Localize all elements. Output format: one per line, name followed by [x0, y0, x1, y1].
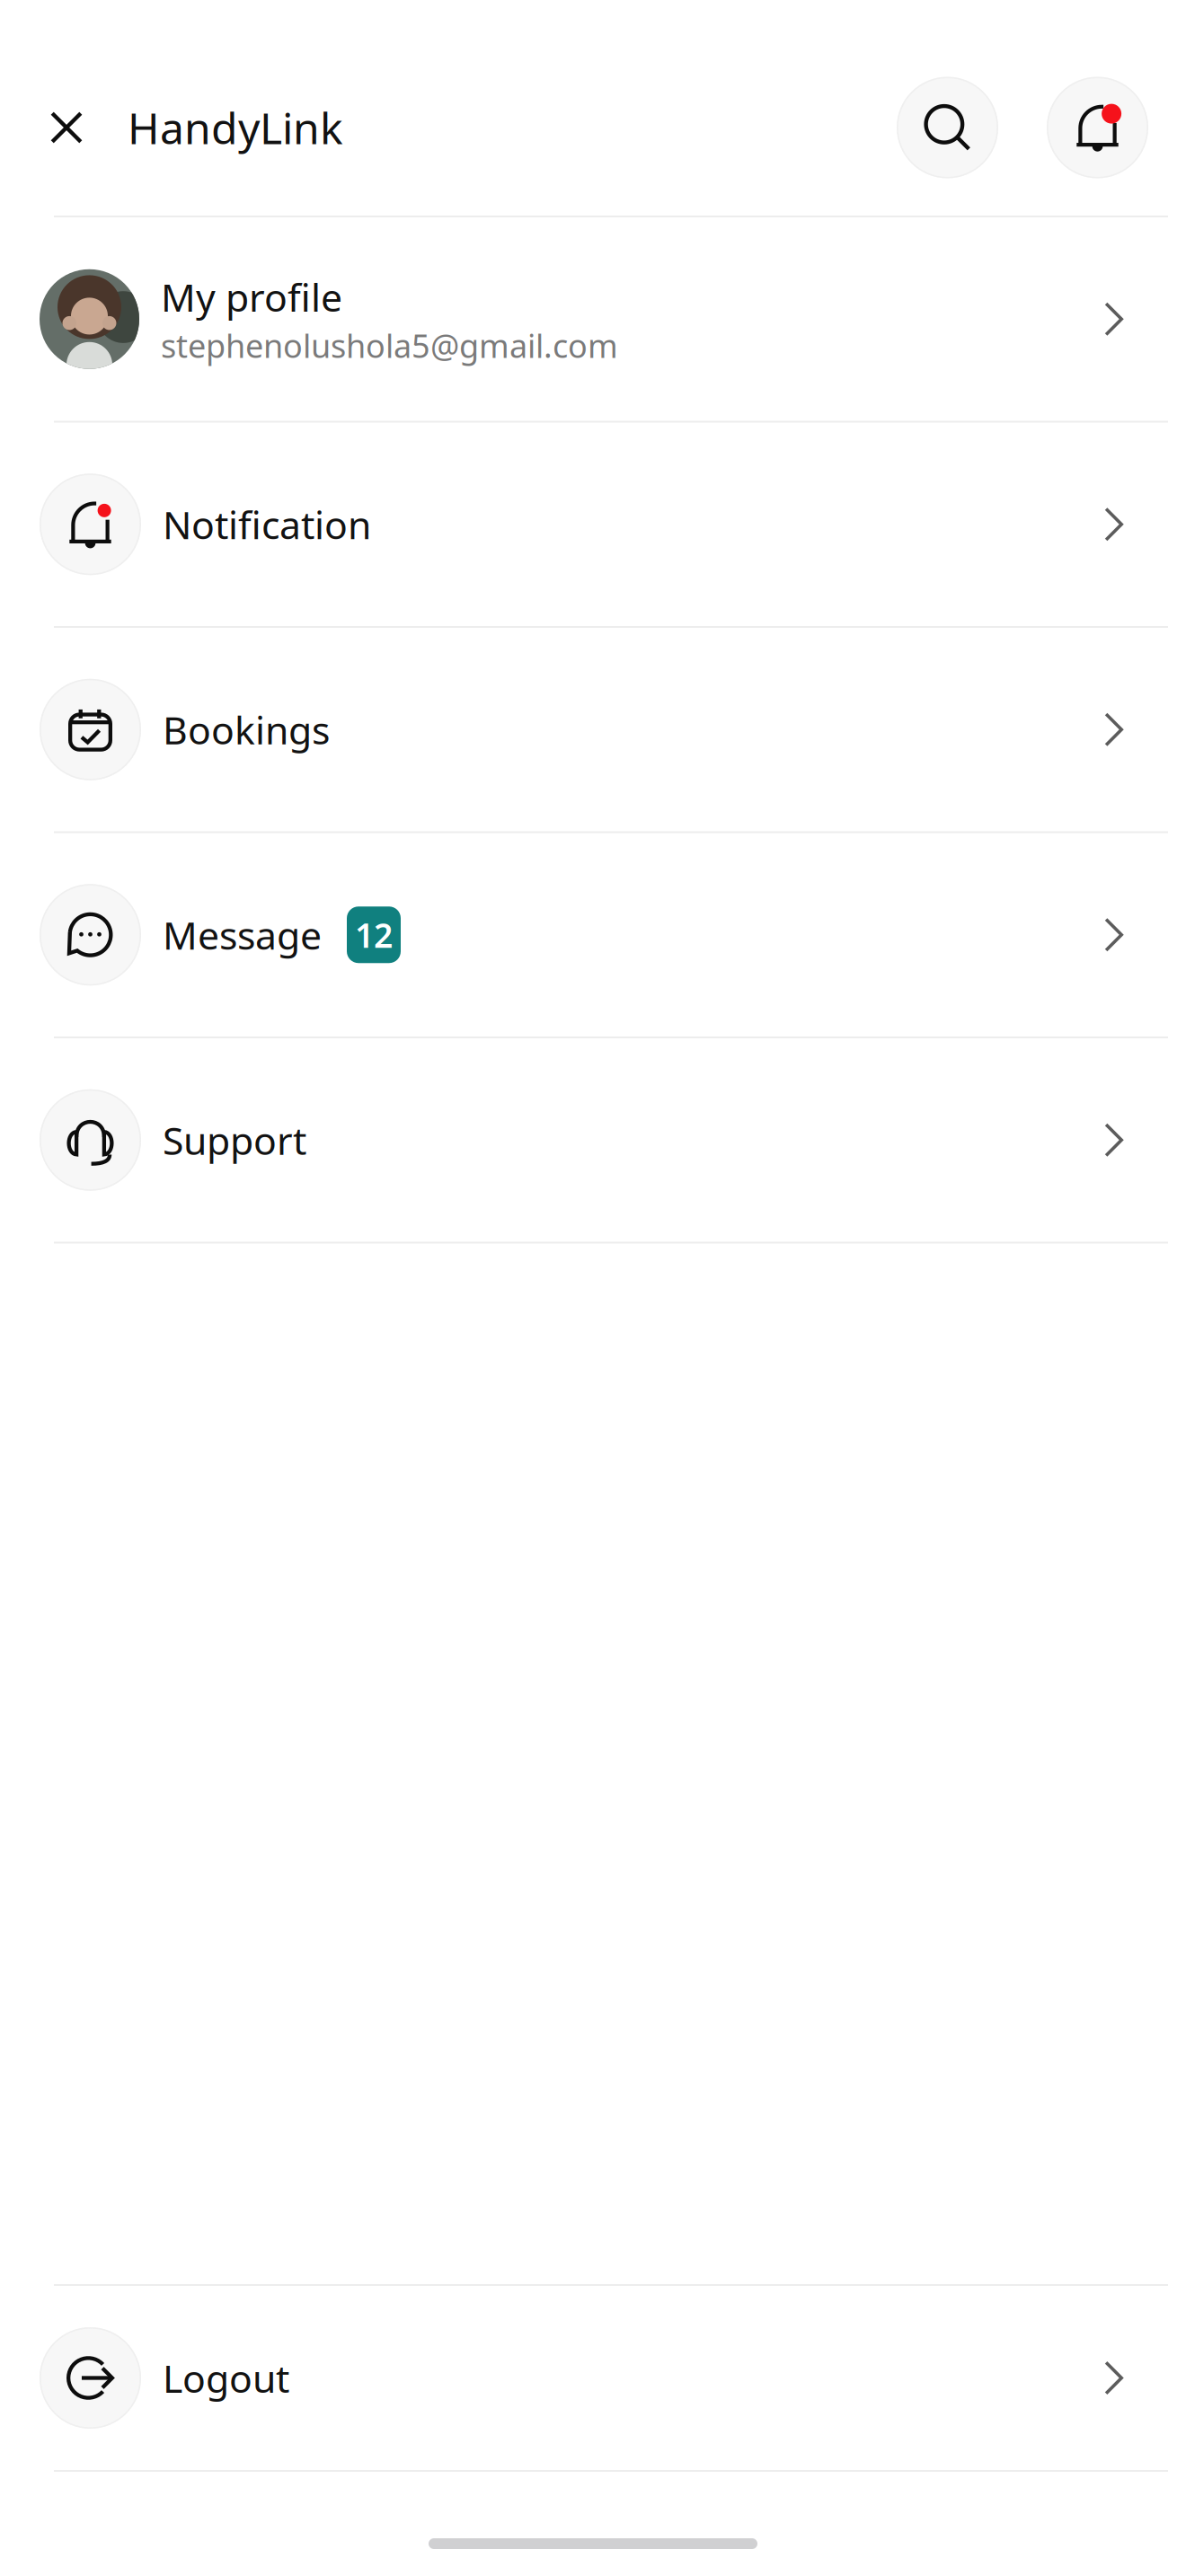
button[interactable]: Message	[0, 833, 1186, 1037]
button[interactable]: Notification	[0, 423, 1186, 626]
staticText: My profile	[161, 271, 342, 322]
staticText: Message	[163, 909, 322, 960]
button[interactable]: Notifications	[998, 77, 1186, 178]
staticText: Bookings	[163, 704, 330, 755]
staticText: Notification	[163, 499, 371, 550]
button[interactable]: My profile	[0, 217, 1186, 421]
staticText: HandyLink	[128, 99, 343, 156]
button[interactable]: Logout	[0, 2286, 1186, 2470]
staticText: stephenolushola5@gmail.com	[161, 324, 618, 367]
staticText: Support	[163, 1115, 306, 1165]
button[interactable]: Close	[0, 86, 108, 169]
button[interactable]: Search	[897, 77, 998, 178]
staticText: Logout	[163, 2353, 289, 2403]
staticText: 12	[355, 913, 393, 957]
button[interactable]: Bookings	[0, 628, 1186, 831]
button[interactable]: Support	[0, 1038, 1186, 1242]
